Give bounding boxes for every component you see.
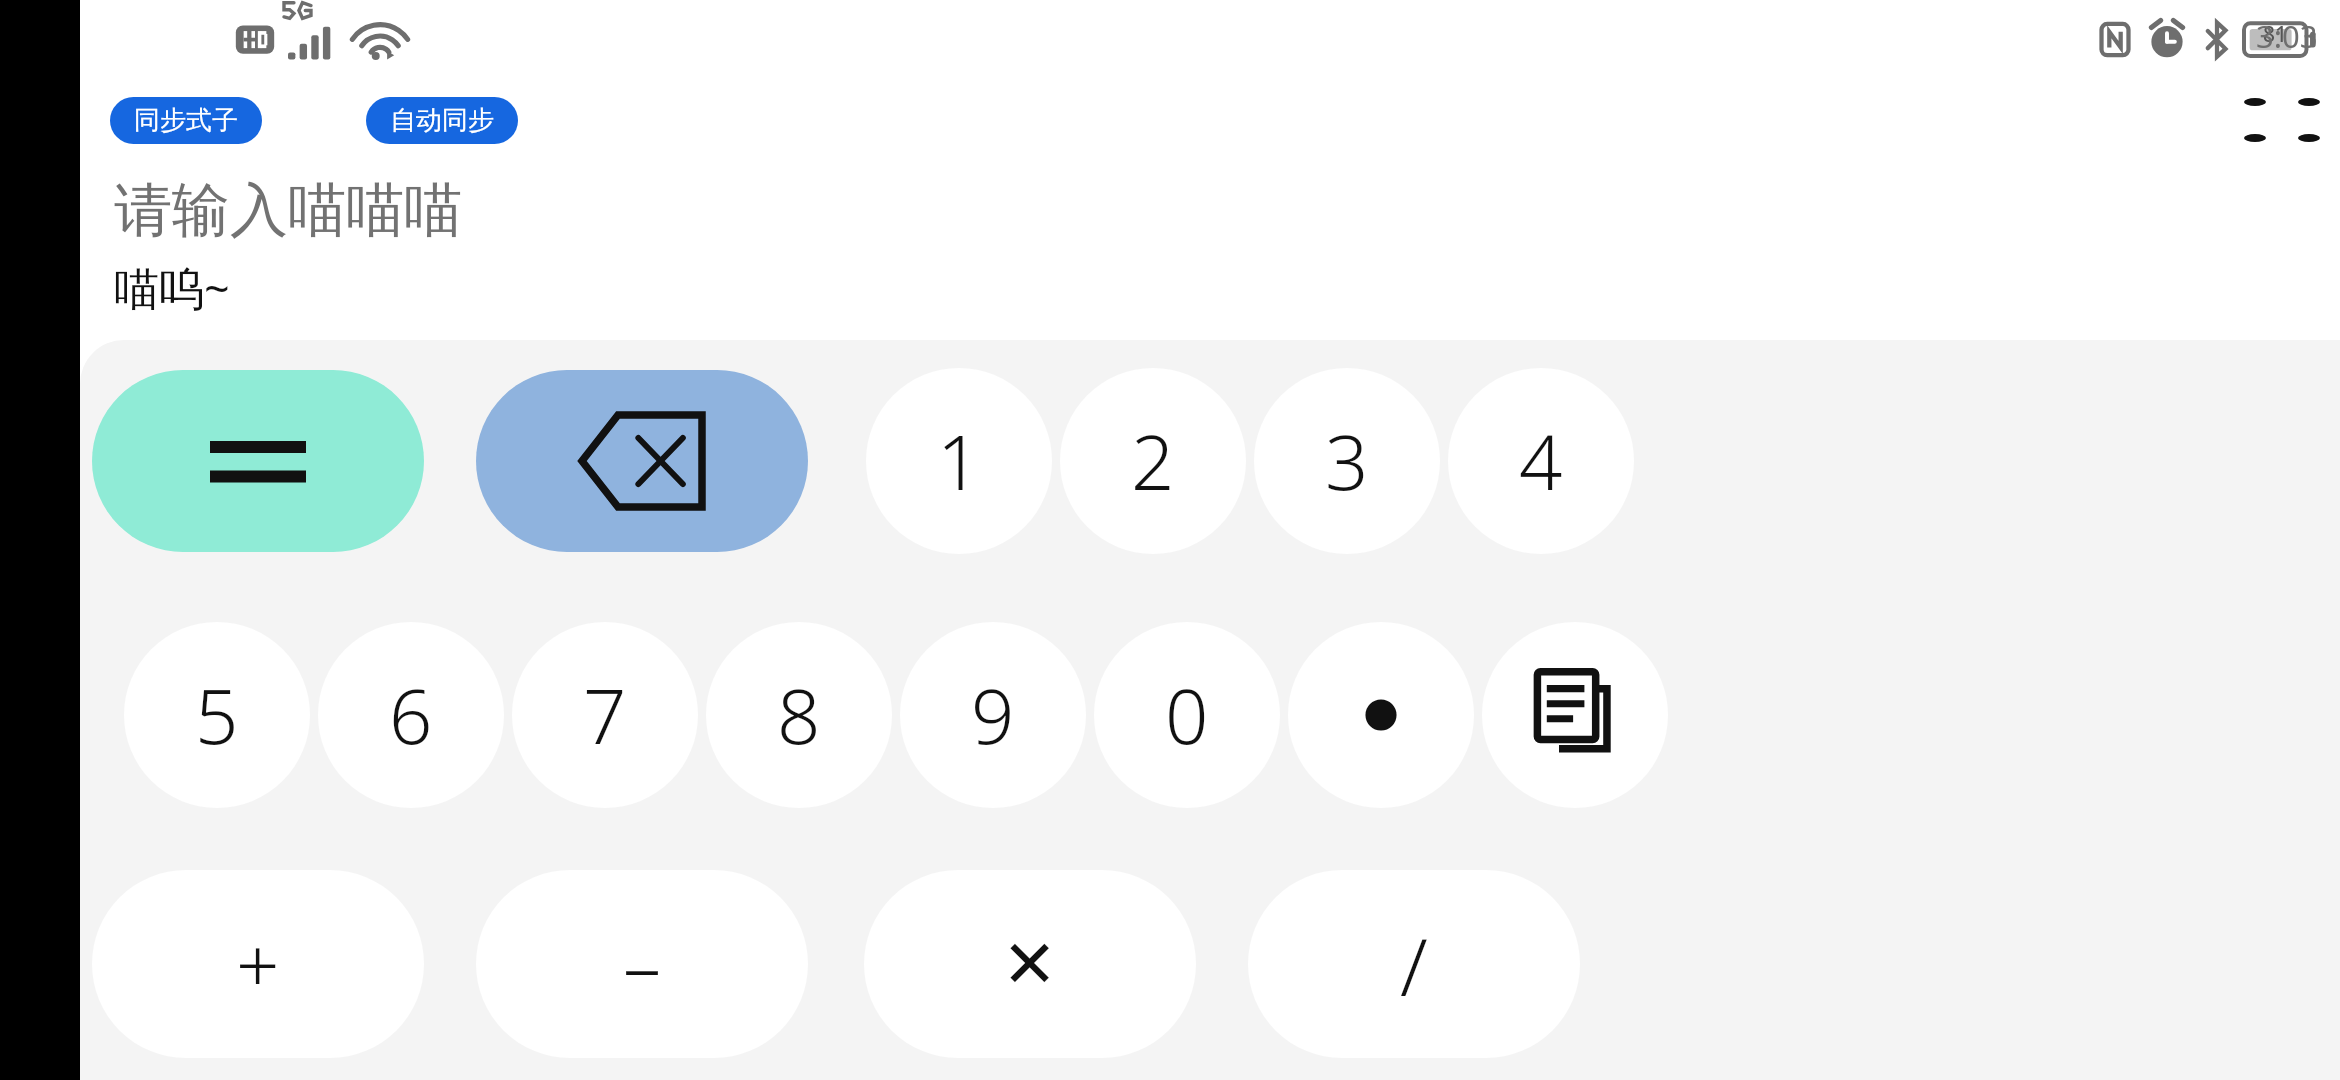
staticText: ✕: [1002, 926, 1058, 1003]
staticText: 喵呜~: [114, 257, 230, 318]
button[interactable]: 2: [1060, 368, 1246, 554]
button[interactable]: +: [92, 870, 424, 1058]
staticText: /: [1400, 910, 1428, 1019]
button[interactable]: 1: [866, 368, 1052, 554]
staticText: 6: [389, 663, 433, 767]
button[interactable]: Decimal point: [1288, 622, 1474, 808]
button[interactable]: 7: [512, 622, 698, 808]
button[interactable]: 自动同步: [366, 97, 518, 144]
staticText: 请输入喵喵喵: [114, 174, 462, 247]
staticText: 0: [1165, 663, 1209, 767]
button[interactable]: 8: [706, 622, 892, 808]
button[interactable]: Paste: [1482, 622, 1668, 808]
button[interactable]: ✕: [864, 870, 1196, 1058]
staticText: 1: [937, 409, 981, 513]
staticText: 8: [777, 663, 821, 767]
staticText: 81: [2263, 20, 2288, 49]
staticText: 4: [1519, 409, 1563, 513]
staticText: –: [623, 912, 661, 1016]
button[interactable]: 3: [1254, 368, 1440, 554]
staticText: 3:03: [2256, 15, 2318, 57]
button[interactable]: –: [476, 870, 808, 1058]
staticText: 自动同步: [390, 104, 494, 137]
button[interactable]: 4: [1448, 368, 1634, 554]
staticText: 5: [195, 663, 239, 767]
button[interactable]: 0: [1094, 622, 1280, 808]
button[interactable]: More options: [2234, 72, 2330, 168]
button[interactable]: /: [1248, 870, 1580, 1058]
staticText: 3: [1325, 409, 1369, 513]
button[interactable]: Equals: [92, 370, 424, 552]
button[interactable]: 同步式子: [110, 97, 262, 144]
staticText: 7: [583, 663, 627, 767]
button[interactable]: 6: [318, 622, 504, 808]
staticText: 2: [1131, 409, 1175, 513]
button[interactable]: 5: [124, 622, 310, 808]
staticText: 9: [971, 663, 1015, 767]
button[interactable]: 9: [900, 622, 1086, 808]
staticText: 同步式子: [134, 104, 238, 137]
button[interactable]: Backspace: [476, 370, 808, 552]
staticText: +: [236, 912, 280, 1016]
